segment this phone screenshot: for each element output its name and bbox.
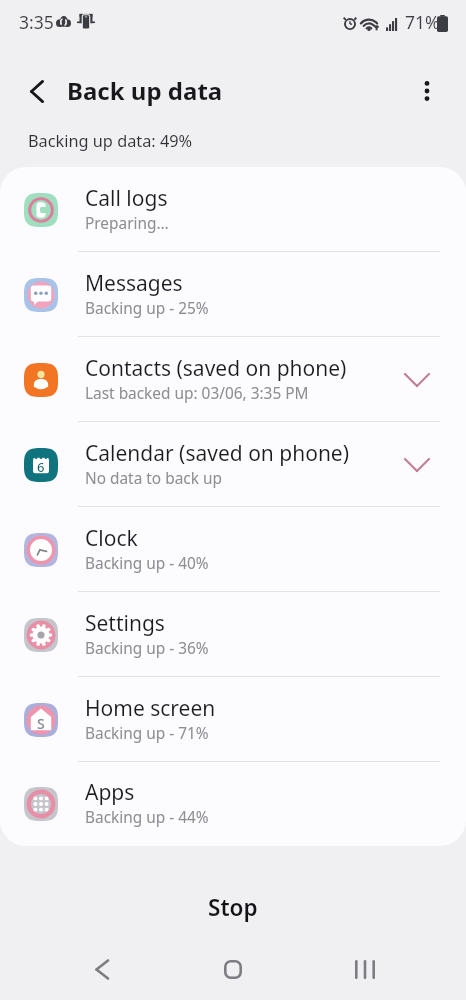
staticText: Backing up - 40% [85, 553, 209, 574]
staticText: Backing up - 44% [85, 807, 209, 828]
staticText: Stop [208, 892, 258, 923]
button[interactable]: Call logs [0, 167, 466, 252]
staticText: Back up data [67, 74, 223, 107]
staticText: 71% [405, 10, 440, 34]
button[interactable]: Contacts (saved on phone) [0, 337, 466, 422]
staticText: Messages [85, 269, 183, 298]
staticText: S [37, 714, 45, 733]
staticText: Call logs [85, 184, 168, 213]
staticText: 3:35 [19, 10, 54, 34]
staticText: Backing up - 71% [85, 723, 209, 744]
staticText: Calendar (saved on phone) [85, 439, 350, 468]
staticText: Last backed up: 03/06, 3:35 PM [85, 383, 309, 404]
button[interactable]: Clock [0, 507, 466, 592]
staticText: Backing up - 36% [85, 638, 209, 659]
button[interactable]: Settings [0, 592, 466, 677]
staticText: No data to back up [85, 468, 222, 489]
button[interactable]: Messages [0, 252, 466, 337]
staticText: Backing up data: 49% [28, 130, 193, 152]
button[interactable]: Recents [321, 938, 409, 1000]
button[interactable]: S [0, 677, 466, 762]
staticText: Contacts (saved on phone) [85, 354, 347, 383]
button[interactable]: More options [404, 68, 450, 114]
button[interactable]: Back [58, 938, 146, 1000]
button[interactable]: Apps [0, 762, 466, 846]
staticText: Home screen [85, 694, 216, 723]
staticText: Clock [85, 524, 138, 553]
staticText: 6 [37, 458, 45, 476]
staticText: Preparing… [85, 213, 169, 234]
staticText: Apps [85, 778, 135, 807]
button[interactable]: Stop [0, 876, 466, 938]
button[interactable]: 6 [0, 422, 466, 507]
button[interactable]: Back [12, 66, 62, 116]
staticText: Backing up - 25% [85, 298, 209, 319]
button[interactable]: Home [189, 938, 277, 1000]
staticText: Settings [85, 609, 165, 638]
